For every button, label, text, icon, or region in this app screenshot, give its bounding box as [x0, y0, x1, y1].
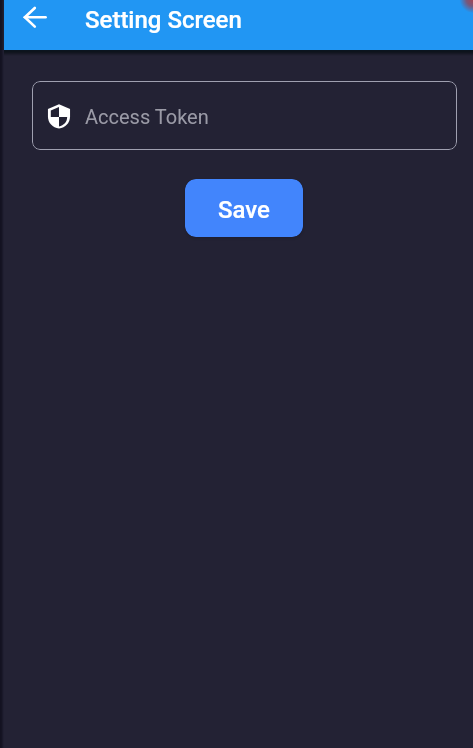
button[interactable]: Access Token: [32, 81, 457, 150]
button[interactable]: Save: [185, 179, 303, 237]
button[interactable]: Back: [21, 2, 51, 32]
staticText: Setting Screen: [85, 6, 242, 34]
staticText: Save: [218, 196, 270, 224]
staticText: Access Token: [85, 105, 209, 128]
